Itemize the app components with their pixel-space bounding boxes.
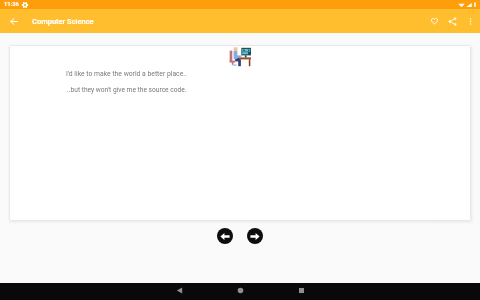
button[interactable]: Next [247, 228, 263, 244]
button[interactable]: Previous [217, 228, 233, 244]
staticText: ..but they won't give me the source code… [67, 86, 187, 94]
button[interactable]: Share [443, 12, 461, 30]
button[interactable]: Home [229, 282, 251, 299]
button[interactable]: Back [0, 9, 27, 33]
button[interactable]: Back [168, 282, 190, 299]
staticText: 11:36 [4, 1, 19, 8]
button[interactable]: Recents [290, 282, 312, 299]
button[interactable]: I'd like to make the world a better plac… [9, 45, 471, 221]
staticText: I'd like to make the world a better plac… [66, 70, 187, 78]
button[interactable]: More options [461, 12, 479, 30]
staticText: Computer Science [32, 17, 94, 26]
button[interactable]: Favorite [425, 12, 443, 30]
